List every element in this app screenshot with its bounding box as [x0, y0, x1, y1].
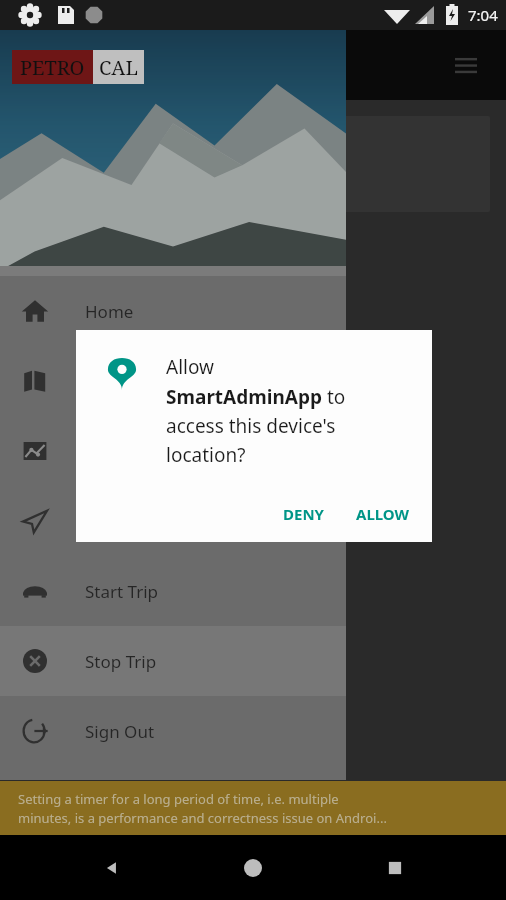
button[interactable]: Home [0, 276, 346, 346]
button[interactable]: Menu item [0, 346, 346, 416]
staticText: Allow SmartAdminApp to access this devic… [166, 354, 346, 467]
staticText: 7:04 [468, 5, 498, 25]
staticText: Sign Out [85, 720, 155, 743]
button[interactable]: ALLOW [342, 494, 424, 534]
button[interactable]: Start Trip [0, 556, 346, 626]
staticText: Start Trip [85, 580, 159, 603]
button[interactable]: Recents [365, 838, 425, 898]
button[interactable] [16, 116, 490, 212]
staticText: Home [85, 300, 134, 323]
button[interactable]: Home [223, 838, 283, 898]
button[interactable]: Stop Trip [0, 626, 346, 696]
staticText: PETRO [20, 54, 85, 81]
staticText: ALLOW [356, 504, 410, 524]
button[interactable]: Menu item [0, 416, 346, 486]
staticText: DENY [283, 504, 324, 524]
button[interactable]: Menu item [0, 486, 346, 556]
button[interactable]: Open navigation menu [442, 41, 490, 89]
staticText: Setting a timer for a long period of tim… [18, 790, 387, 827]
button[interactable]: Back [82, 838, 142, 898]
staticText: Stop Trip [85, 650, 157, 673]
button[interactable]: Sign Out [0, 696, 346, 766]
staticText: CAL [99, 54, 138, 81]
button[interactable]: DENY [269, 494, 338, 534]
